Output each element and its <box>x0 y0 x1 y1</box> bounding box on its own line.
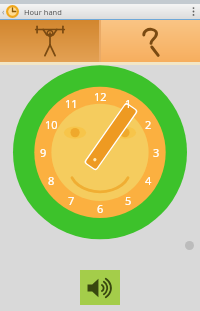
staticText: 2 <box>145 117 152 132</box>
staticText: 5 <box>125 193 132 208</box>
button[interactable]: Exercise <box>0 20 99 62</box>
staticText: ‹ <box>2 6 5 17</box>
staticText: 4 <box>145 173 152 188</box>
button[interactable]: More options <box>186 4 200 19</box>
staticText: 10 <box>45 117 58 132</box>
staticText: 8 <box>48 173 55 188</box>
staticText: 1 <box>125 96 132 111</box>
staticText: 3 <box>153 145 160 160</box>
staticText: 9 <box>40 145 47 160</box>
staticText: Hour hand <box>24 7 62 17</box>
button[interactable]: Speak the time <box>80 270 120 305</box>
staticText: 7 <box>68 193 75 208</box>
button[interactable]: Help <box>101 20 200 62</box>
staticText: 6 <box>97 201 104 216</box>
staticText: 12 <box>94 89 107 104</box>
staticText: 11 <box>65 96 78 111</box>
